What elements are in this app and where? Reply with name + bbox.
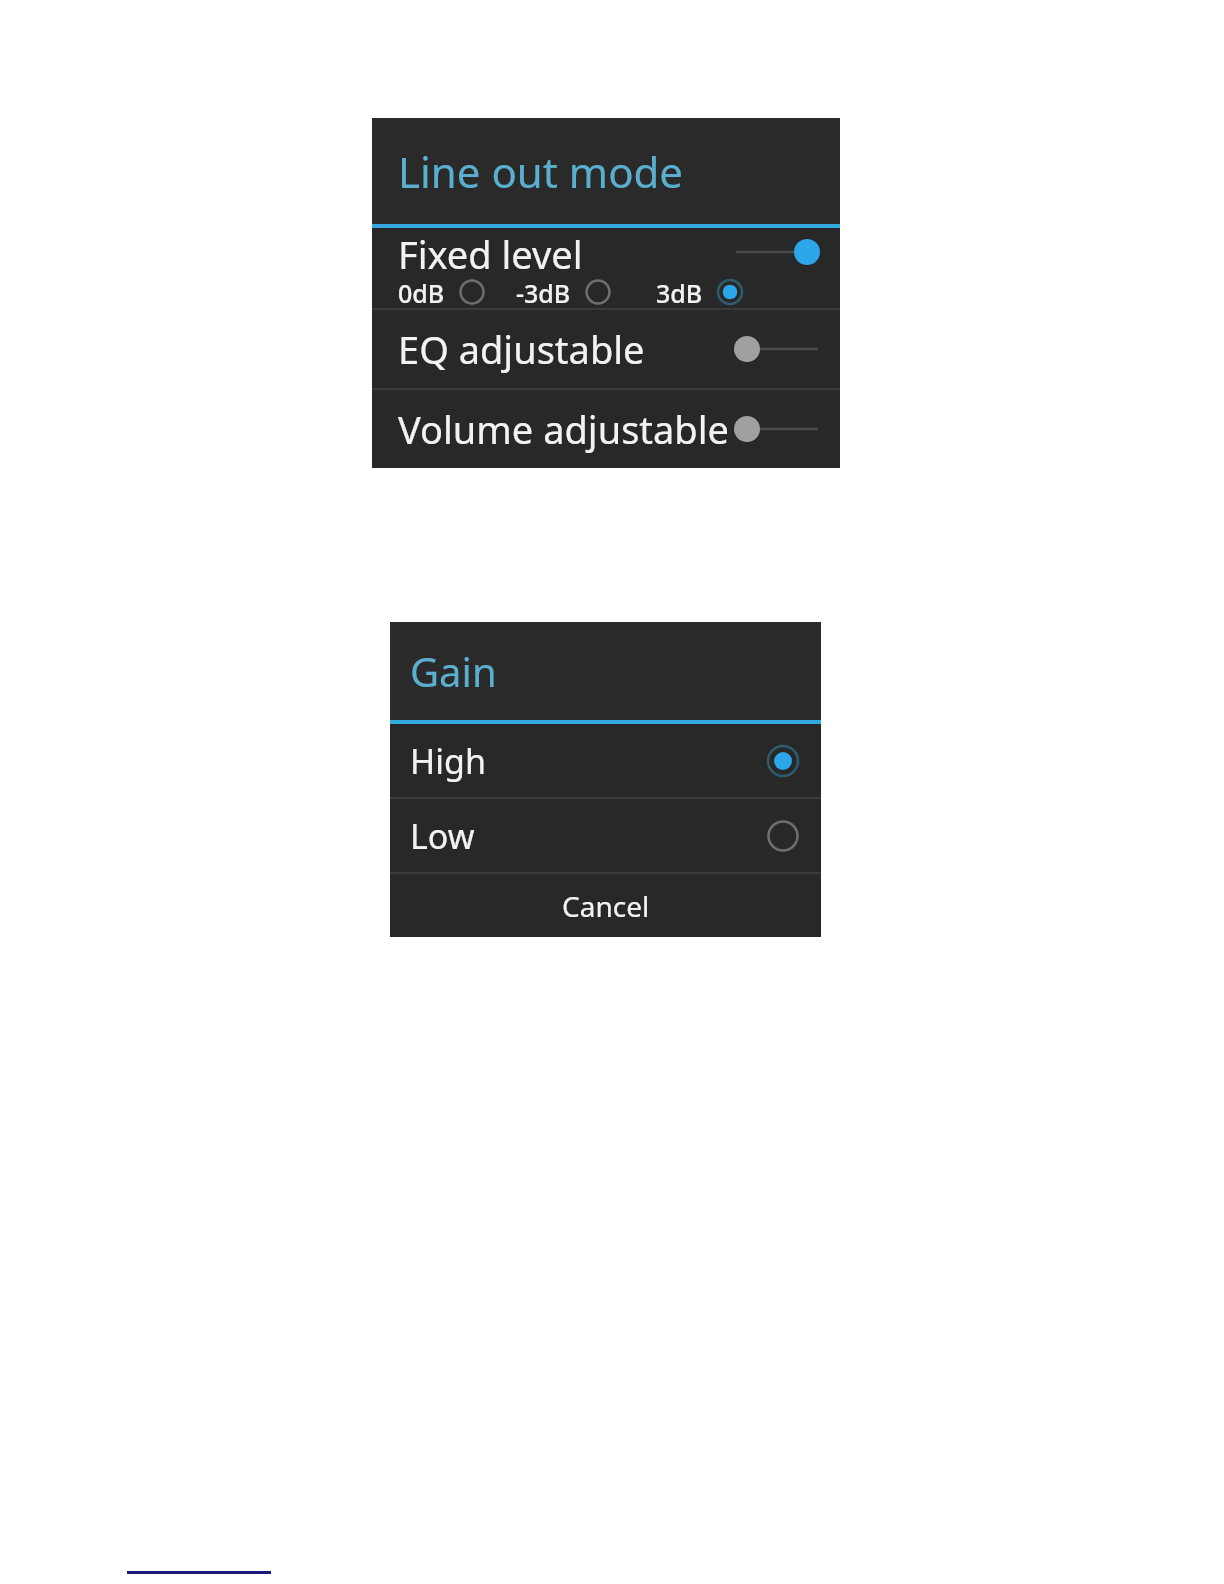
- button[interactable]: Volume adjustable: [372, 390, 840, 468]
- button[interactable]: -3dB: [510, 276, 617, 308]
- button[interactable]: Fixed level switch, on: [732, 232, 822, 272]
- staticText: Cancel: [562, 887, 650, 925]
- button[interactable]: 3dB: [650, 276, 749, 308]
- staticText: High: [410, 738, 486, 784]
- button[interactable]: Fixed level: [372, 228, 840, 308]
- staticText: 3dB: [656, 276, 703, 308]
- staticText: Line out mode: [398, 143, 684, 200]
- staticText: Fixed level: [398, 228, 583, 276]
- button[interactable]: Volume adjustable switch, off: [732, 409, 822, 449]
- button[interactable]: Low: [390, 799, 821, 872]
- button[interactable]: 0dB: [392, 276, 491, 308]
- button[interactable]: High: [390, 724, 821, 797]
- button[interactable]: EQ adjustable: [372, 310, 840, 388]
- staticText: EQ adjustable: [398, 323, 645, 375]
- button[interactable]: EQ adjustable switch, off: [732, 329, 822, 369]
- staticText: -3dB: [516, 276, 571, 308]
- staticText: 0dB: [398, 276, 445, 308]
- staticText: Low: [410, 813, 475, 859]
- staticText: Volume adjustable: [398, 403, 729, 455]
- staticText: Gain: [410, 644, 497, 698]
- button[interactable]: Cancel: [390, 874, 821, 937]
